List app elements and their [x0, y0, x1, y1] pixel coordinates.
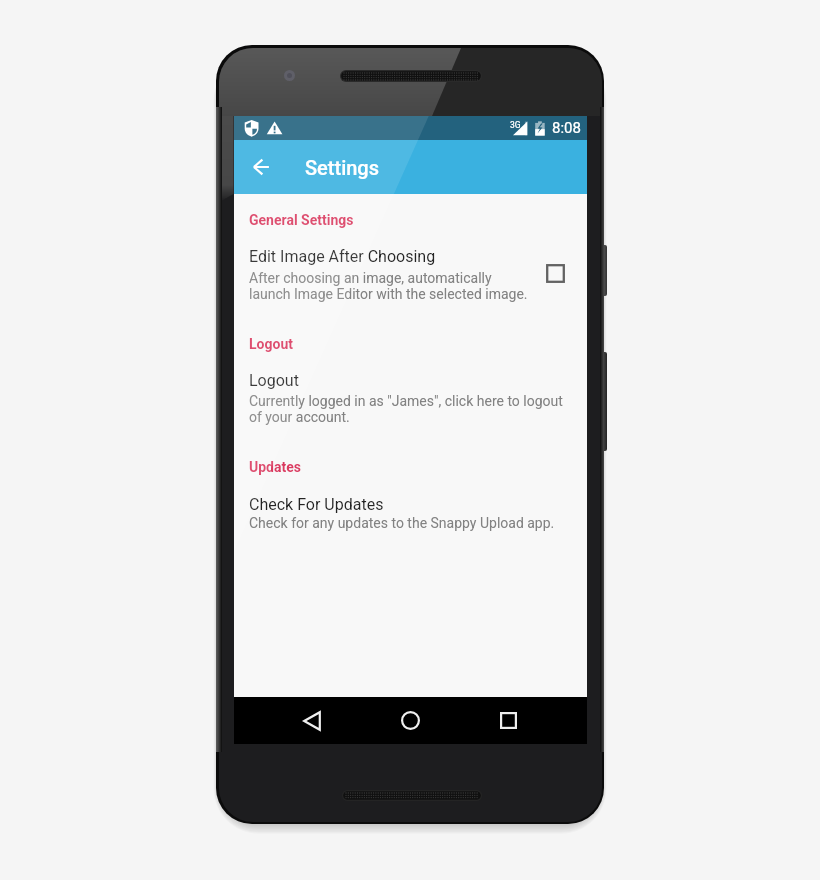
staticText: 8:08: [552, 119, 581, 137]
staticText: Logout: [249, 371, 299, 390]
button[interactable]: Check For Updates: [234, 487, 587, 535]
staticText: Check For Updates: [249, 495, 384, 514]
staticText: Edit Image After Choosing: [249, 247, 436, 266]
staticText: Logout: [249, 336, 293, 352]
button[interactable]: Edit Image After Choosing: [234, 239, 587, 305]
staticText: Check for any updates to the Snappy Uplo…: [249, 515, 555, 531]
button[interactable]: Recent apps: [485, 697, 531, 744]
staticText: Updates: [249, 459, 301, 475]
button[interactable]: Navigate up: [241, 145, 281, 189]
button[interactable]: Logout: [234, 363, 587, 428]
staticText: Currently logged in as "James", click he…: [249, 393, 563, 425]
staticText: Settings: [305, 156, 380, 179]
staticText: 3G: [510, 120, 521, 130]
staticText: General Settings: [249, 212, 354, 228]
staticText: After choosing an image, automatically l…: [249, 270, 528, 302]
button[interactable]: Back: [289, 697, 335, 744]
button[interactable]: Home: [387, 697, 433, 744]
